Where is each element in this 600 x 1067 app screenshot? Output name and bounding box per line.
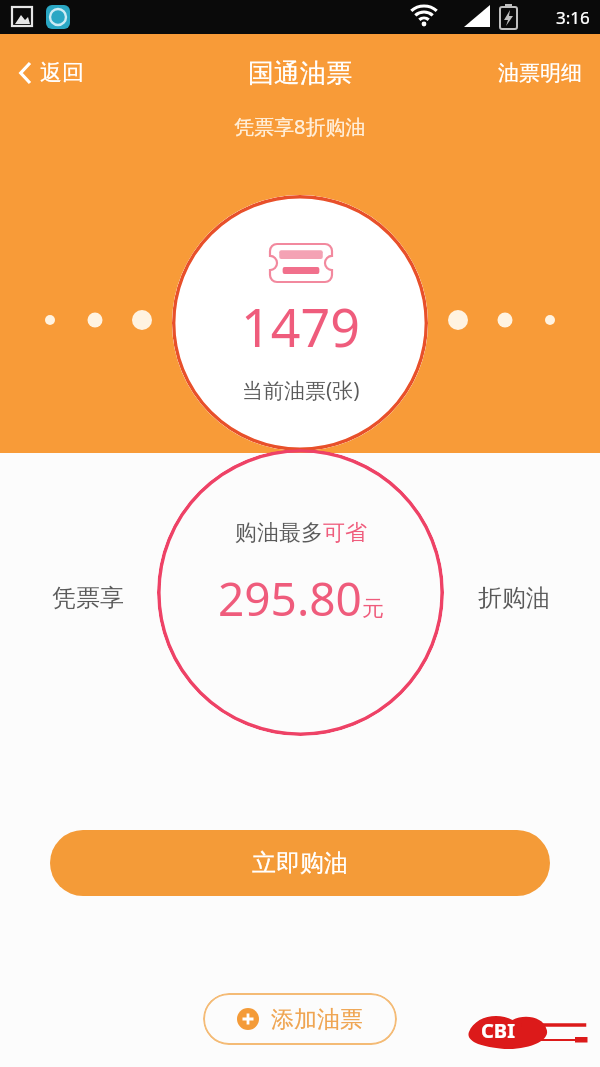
button[interactable]: 1479 bbox=[172, 195, 428, 451]
staticText: 国通油票 bbox=[248, 57, 352, 90]
button[interactable]: 油票明细 bbox=[486, 52, 594, 94]
other: CBI watermark bbox=[465, 1005, 590, 1055]
staticText: CBI bbox=[481, 1017, 515, 1044]
staticText: 凭票享 bbox=[52, 583, 124, 613]
staticText: 购油最多可省 bbox=[235, 519, 367, 547]
staticText: 1479 bbox=[241, 291, 360, 362]
staticText: 返回 bbox=[40, 59, 84, 87]
staticText: 凭票享8折购油 bbox=[234, 113, 366, 140]
staticText: 油票明细 bbox=[498, 60, 582, 86]
button[interactable]: 立即购油 bbox=[50, 830, 550, 896]
button[interactable]: 购油最多可省 bbox=[157, 449, 444, 736]
staticText: 立即购油 bbox=[252, 848, 348, 878]
button[interactable]: 返回 bbox=[8, 51, 94, 95]
staticText: 添加油票 bbox=[271, 1005, 363, 1034]
staticText: 折购油 bbox=[478, 583, 550, 613]
staticText: 当前油票(张) bbox=[242, 376, 360, 405]
button[interactable]: 添加油票 bbox=[203, 993, 397, 1045]
staticText: 3:16 bbox=[556, 6, 590, 29]
staticText: 295.80元 bbox=[218, 567, 384, 630]
